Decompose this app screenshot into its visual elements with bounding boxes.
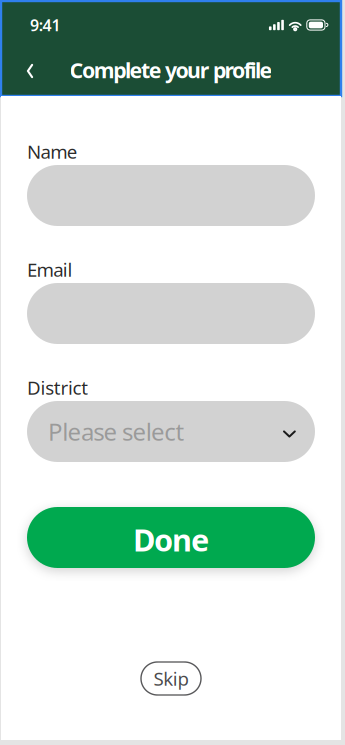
staticText: Skip — [153, 666, 188, 691]
staticText: Email — [27, 257, 72, 282]
button[interactable]: Skip — [141, 662, 201, 695]
staticText: Name — [27, 139, 78, 164]
button[interactable]: Please select — [27, 401, 315, 462]
staticText: Done — [133, 519, 209, 560]
button[interactable]: Back — [13, 51, 47, 89]
staticText: Please select — [48, 416, 185, 447]
button[interactable]: Done — [27, 507, 315, 568]
staticText: District — [27, 375, 88, 400]
staticText: Complete your profile — [69, 56, 272, 84]
staticText: 9:41 — [30, 14, 60, 36]
